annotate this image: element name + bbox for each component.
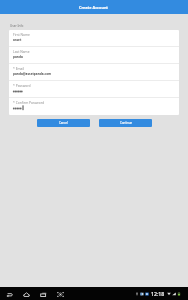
staticText: panda@assetpanda.com	[13, 72, 52, 76]
button[interactable]: * Email	[9, 64, 179, 81]
staticText: 12:18	[151, 290, 165, 297]
staticText: * Email	[13, 66, 25, 70]
staticText: asset	[13, 38, 22, 42]
button[interactable]: First Name	[9, 30, 179, 47]
button[interactable]: Home	[22, 290, 30, 298]
button[interactable]: Continue	[99, 119, 152, 127]
button[interactable]: Back	[5, 290, 13, 298]
button[interactable]: Cancel	[37, 119, 90, 127]
button[interactable]: Last Name	[9, 47, 179, 64]
staticText: First Name	[13, 32, 30, 36]
button[interactable]: Screenshot	[56, 290, 64, 298]
staticText: * Confirm Password	[13, 100, 44, 104]
staticText: * Password	[13, 83, 31, 87]
staticText: Cancel	[59, 121, 68, 125]
button[interactable]: * Confirm Password	[9, 98, 179, 115]
staticText: Continue	[120, 121, 132, 125]
staticText: Last Name	[13, 49, 30, 53]
staticText: Create Account	[79, 5, 109, 10]
button[interactable]: Recent apps	[39, 290, 47, 298]
staticText: panda	[13, 55, 23, 59]
button[interactable]: * Password	[9, 81, 179, 98]
staticText: User Info	[10, 24, 24, 28]
